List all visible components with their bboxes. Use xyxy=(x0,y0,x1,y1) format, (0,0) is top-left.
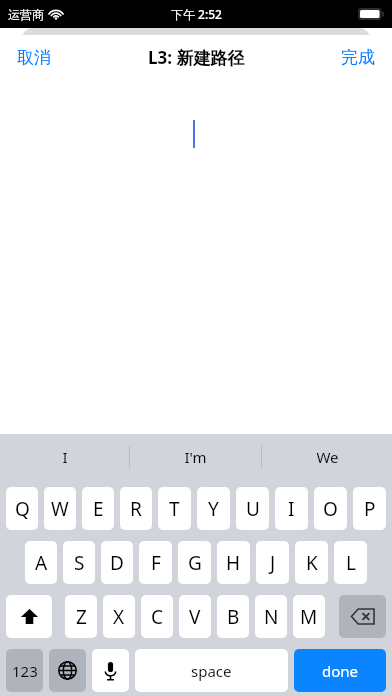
button[interactable]: I xyxy=(0,434,129,479)
staticText: Q xyxy=(15,496,30,522)
staticText: space xyxy=(191,661,232,681)
staticText: We xyxy=(316,447,339,467)
button[interactable]: Y xyxy=(197,487,230,530)
button[interactable]: H xyxy=(217,541,250,584)
button[interactable]: Backspace xyxy=(339,595,386,638)
staticText: L xyxy=(346,550,356,576)
button[interactable]: 完成 xyxy=(324,37,392,78)
button[interactable]: P xyxy=(353,487,386,530)
staticText: E xyxy=(93,496,104,522)
button[interactable]: D xyxy=(101,541,133,584)
button[interactable]: N xyxy=(255,595,287,638)
button[interactable]: Change keyboard xyxy=(49,649,86,692)
staticText: H xyxy=(226,550,241,576)
staticText: R xyxy=(130,496,142,522)
staticText: S xyxy=(74,550,85,576)
staticText: W xyxy=(51,496,69,522)
button[interactable]: G xyxy=(178,541,211,584)
button[interactable]: O xyxy=(314,487,347,530)
staticText: L3: 新建路径 xyxy=(148,46,245,69)
button[interactable]: S xyxy=(63,541,95,584)
staticText: J xyxy=(270,550,276,576)
button[interactable]: L xyxy=(334,541,367,584)
button[interactable]: B xyxy=(217,595,249,638)
staticText: I xyxy=(288,496,295,522)
staticText: V xyxy=(189,604,201,630)
staticText: Z xyxy=(76,604,87,630)
button[interactable]: F xyxy=(139,541,172,584)
staticText: 下午 2:52 xyxy=(171,6,222,22)
button[interactable]: E xyxy=(82,487,114,530)
button[interactable]: U xyxy=(236,487,269,530)
staticText: A xyxy=(35,550,48,576)
staticText: 取消 xyxy=(17,47,51,68)
staticText: N xyxy=(264,604,279,630)
button[interactable]: Z xyxy=(65,595,97,638)
staticText: K xyxy=(306,550,318,576)
button[interactable]: A xyxy=(25,541,57,584)
button[interactable]: C xyxy=(141,595,173,638)
button[interactable]: K xyxy=(295,541,328,584)
staticText: X xyxy=(113,604,125,630)
staticText: G xyxy=(188,550,202,576)
button[interactable]: X xyxy=(103,595,135,638)
staticText: C xyxy=(151,604,164,630)
staticText: I xyxy=(62,447,68,467)
button[interactable]: M xyxy=(293,595,325,638)
button[interactable]: V xyxy=(179,595,211,638)
staticText: T xyxy=(169,496,180,522)
staticText: 123 xyxy=(12,661,38,681)
button[interactable]: I xyxy=(275,487,308,530)
button[interactable]: W xyxy=(44,487,76,530)
staticText: B xyxy=(227,604,240,630)
button[interactable]: 123 xyxy=(6,649,43,692)
button[interactable]: space xyxy=(135,649,288,692)
button[interactable]: T xyxy=(158,487,191,530)
staticText: D xyxy=(110,550,124,576)
button[interactable]: I'm xyxy=(130,434,261,479)
button[interactable]: Shift xyxy=(6,595,52,638)
staticText: done xyxy=(322,661,359,681)
staticText: P xyxy=(364,496,376,522)
staticText: Y xyxy=(208,496,219,522)
button[interactable]: 取消 xyxy=(0,37,68,78)
staticText: F xyxy=(151,550,161,576)
button[interactable]: R xyxy=(120,487,152,530)
staticText: 运营商 xyxy=(8,7,44,22)
button[interactable]: Q xyxy=(6,487,38,530)
staticText: U xyxy=(246,496,260,522)
staticText: M xyxy=(300,604,318,630)
button[interactable]: We xyxy=(262,434,392,479)
button[interactable]: Dictation xyxy=(92,649,129,692)
staticText: 完成 xyxy=(341,47,375,68)
staticText: O xyxy=(323,496,338,522)
button[interactable]: J xyxy=(256,541,289,584)
button[interactable]: done xyxy=(294,649,386,692)
staticText: I'm xyxy=(184,447,207,467)
